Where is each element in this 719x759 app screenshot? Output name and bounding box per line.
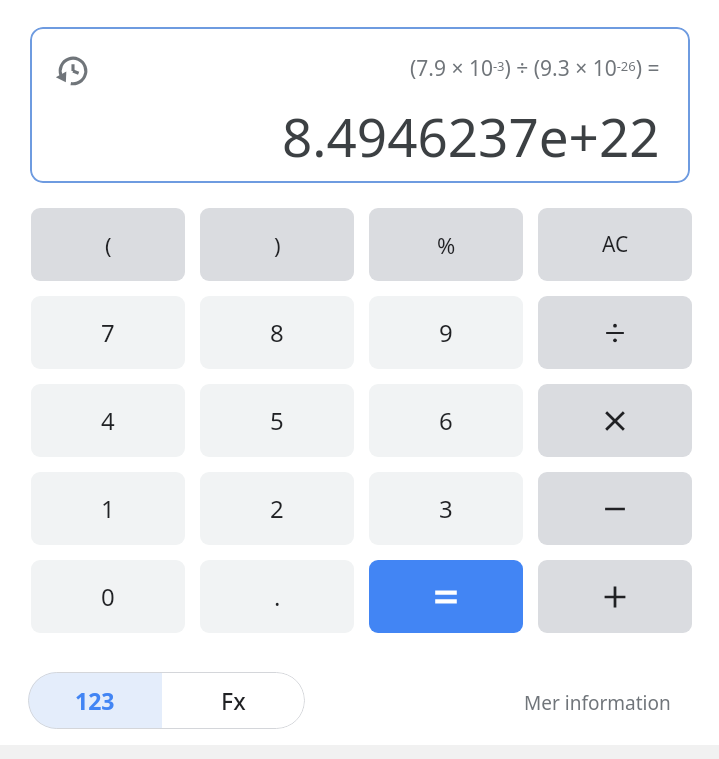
button[interactable]: 123 [28, 672, 162, 729]
button[interactable]: ) [200, 208, 354, 281]
button[interactable]: 6 [369, 384, 523, 457]
button[interactable]: Equals [369, 560, 523, 633]
staticText: ) [274, 230, 281, 260]
button[interactable]: 0 [31, 560, 185, 633]
staticText: % [437, 230, 456, 260]
staticText: Fx [221, 685, 246, 716]
staticText: ( [105, 230, 112, 260]
button[interactable]: 8 [200, 296, 354, 369]
staticText: 9 [439, 316, 453, 349]
button[interactable]: . [200, 560, 354, 633]
button[interactable]: Fx [162, 672, 305, 729]
button[interactable]: Mer information [524, 686, 671, 720]
staticText: 8.4946237e+22 [282, 100, 660, 172]
staticText: 6 [439, 404, 453, 437]
button[interactable]: ( [31, 208, 185, 281]
button[interactable]: AC [538, 208, 692, 281]
button[interactable]: 5 [200, 384, 354, 457]
button[interactable]: 2 [200, 472, 354, 545]
staticText: 123 [75, 685, 115, 716]
button[interactable]: Minus [538, 472, 692, 545]
staticText: 2 [270, 492, 284, 525]
staticText: (7.9 × 10-3) ÷ (9.3 × 10-26) = [410, 54, 660, 83]
staticText: 5 [270, 404, 284, 437]
button[interactable]: History [53, 51, 93, 91]
button[interactable]: 3 [369, 472, 523, 545]
button[interactable]: Multiply [538, 384, 692, 457]
button[interactable]: 9 [369, 296, 523, 369]
staticText: 4 [101, 404, 115, 437]
staticText: 1 [101, 492, 115, 525]
button[interactable]: 1 [31, 472, 185, 545]
button[interactable]: % [369, 208, 523, 281]
staticText: 8 [270, 316, 284, 349]
button[interactable]: Divide [538, 296, 692, 369]
staticText: 3 [439, 492, 453, 525]
staticText: AC [602, 230, 629, 259]
button[interactable]: 7 [31, 296, 185, 369]
button[interactable]: Plus [538, 560, 692, 633]
staticText: 0 [101, 580, 115, 613]
staticText: . [274, 580, 281, 613]
staticText: Mer information [524, 690, 671, 716]
staticText: 7 [101, 316, 115, 349]
button[interactable]: History [30, 27, 690, 183]
button[interactable]: 4 [31, 384, 185, 457]
